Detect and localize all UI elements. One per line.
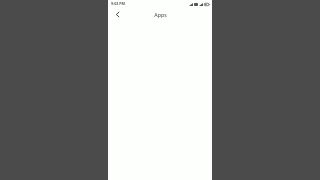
staticText: 9:02 PM [111,1,126,6]
button[interactable]: Back [113,10,122,19]
staticText: Apps [154,11,167,18]
